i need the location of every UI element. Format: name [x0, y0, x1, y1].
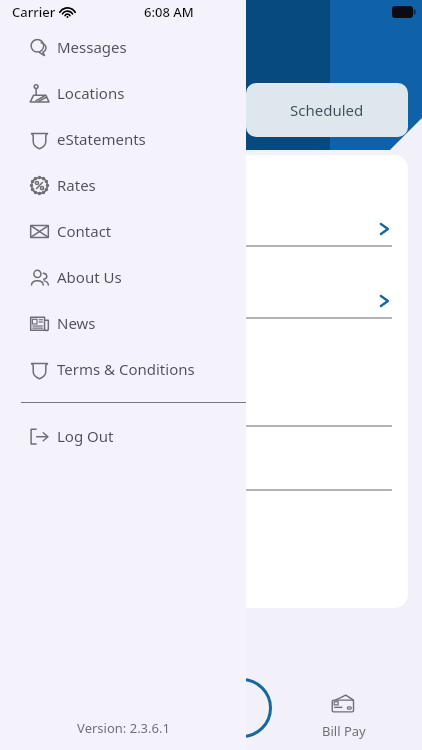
- button[interactable]: [230, 155, 408, 246]
- staticText: Bill Pay: [322, 722, 366, 740]
- button[interactable]: Bill Pay: [306, 690, 382, 746]
- button[interactable]: Contact: [0, 208, 246, 254]
- staticText: Scheduled: [290, 100, 364, 120]
- staticText: News: [57, 313, 96, 333]
- staticText: Carrier: [12, 3, 56, 21]
- button[interactable]: Scheduled: [246, 83, 408, 137]
- staticText: eStatements: [57, 129, 146, 149]
- button[interactable]: Messages: [0, 24, 246, 70]
- button[interactable]: Open item: [230, 211, 408, 247]
- button[interactable]: Locations: [0, 70, 246, 116]
- staticText: 6:08 AM: [144, 3, 194, 21]
- staticText: Log Out: [57, 426, 114, 446]
- button[interactable]: Open item: [230, 283, 408, 319]
- button[interactable]: Log Out: [0, 413, 246, 459]
- button[interactable]: Terms & Conditions: [0, 346, 246, 392]
- button[interactable]: Rates: [0, 162, 246, 208]
- button[interactable]: eStatements: [0, 116, 246, 162]
- staticText: Rates: [57, 175, 96, 195]
- staticText: Terms & Conditions: [57, 359, 195, 379]
- staticText: Locations: [57, 83, 125, 103]
- button[interactable]: Add: [212, 678, 272, 738]
- button[interactable]: About Us: [0, 254, 246, 300]
- staticText: Messages: [57, 37, 127, 57]
- staticText: Contact: [57, 221, 112, 241]
- staticText: About Us: [57, 267, 122, 287]
- button[interactable]: News: [0, 300, 246, 346]
- staticText: Version: 2.3.6.1: [77, 719, 170, 737]
